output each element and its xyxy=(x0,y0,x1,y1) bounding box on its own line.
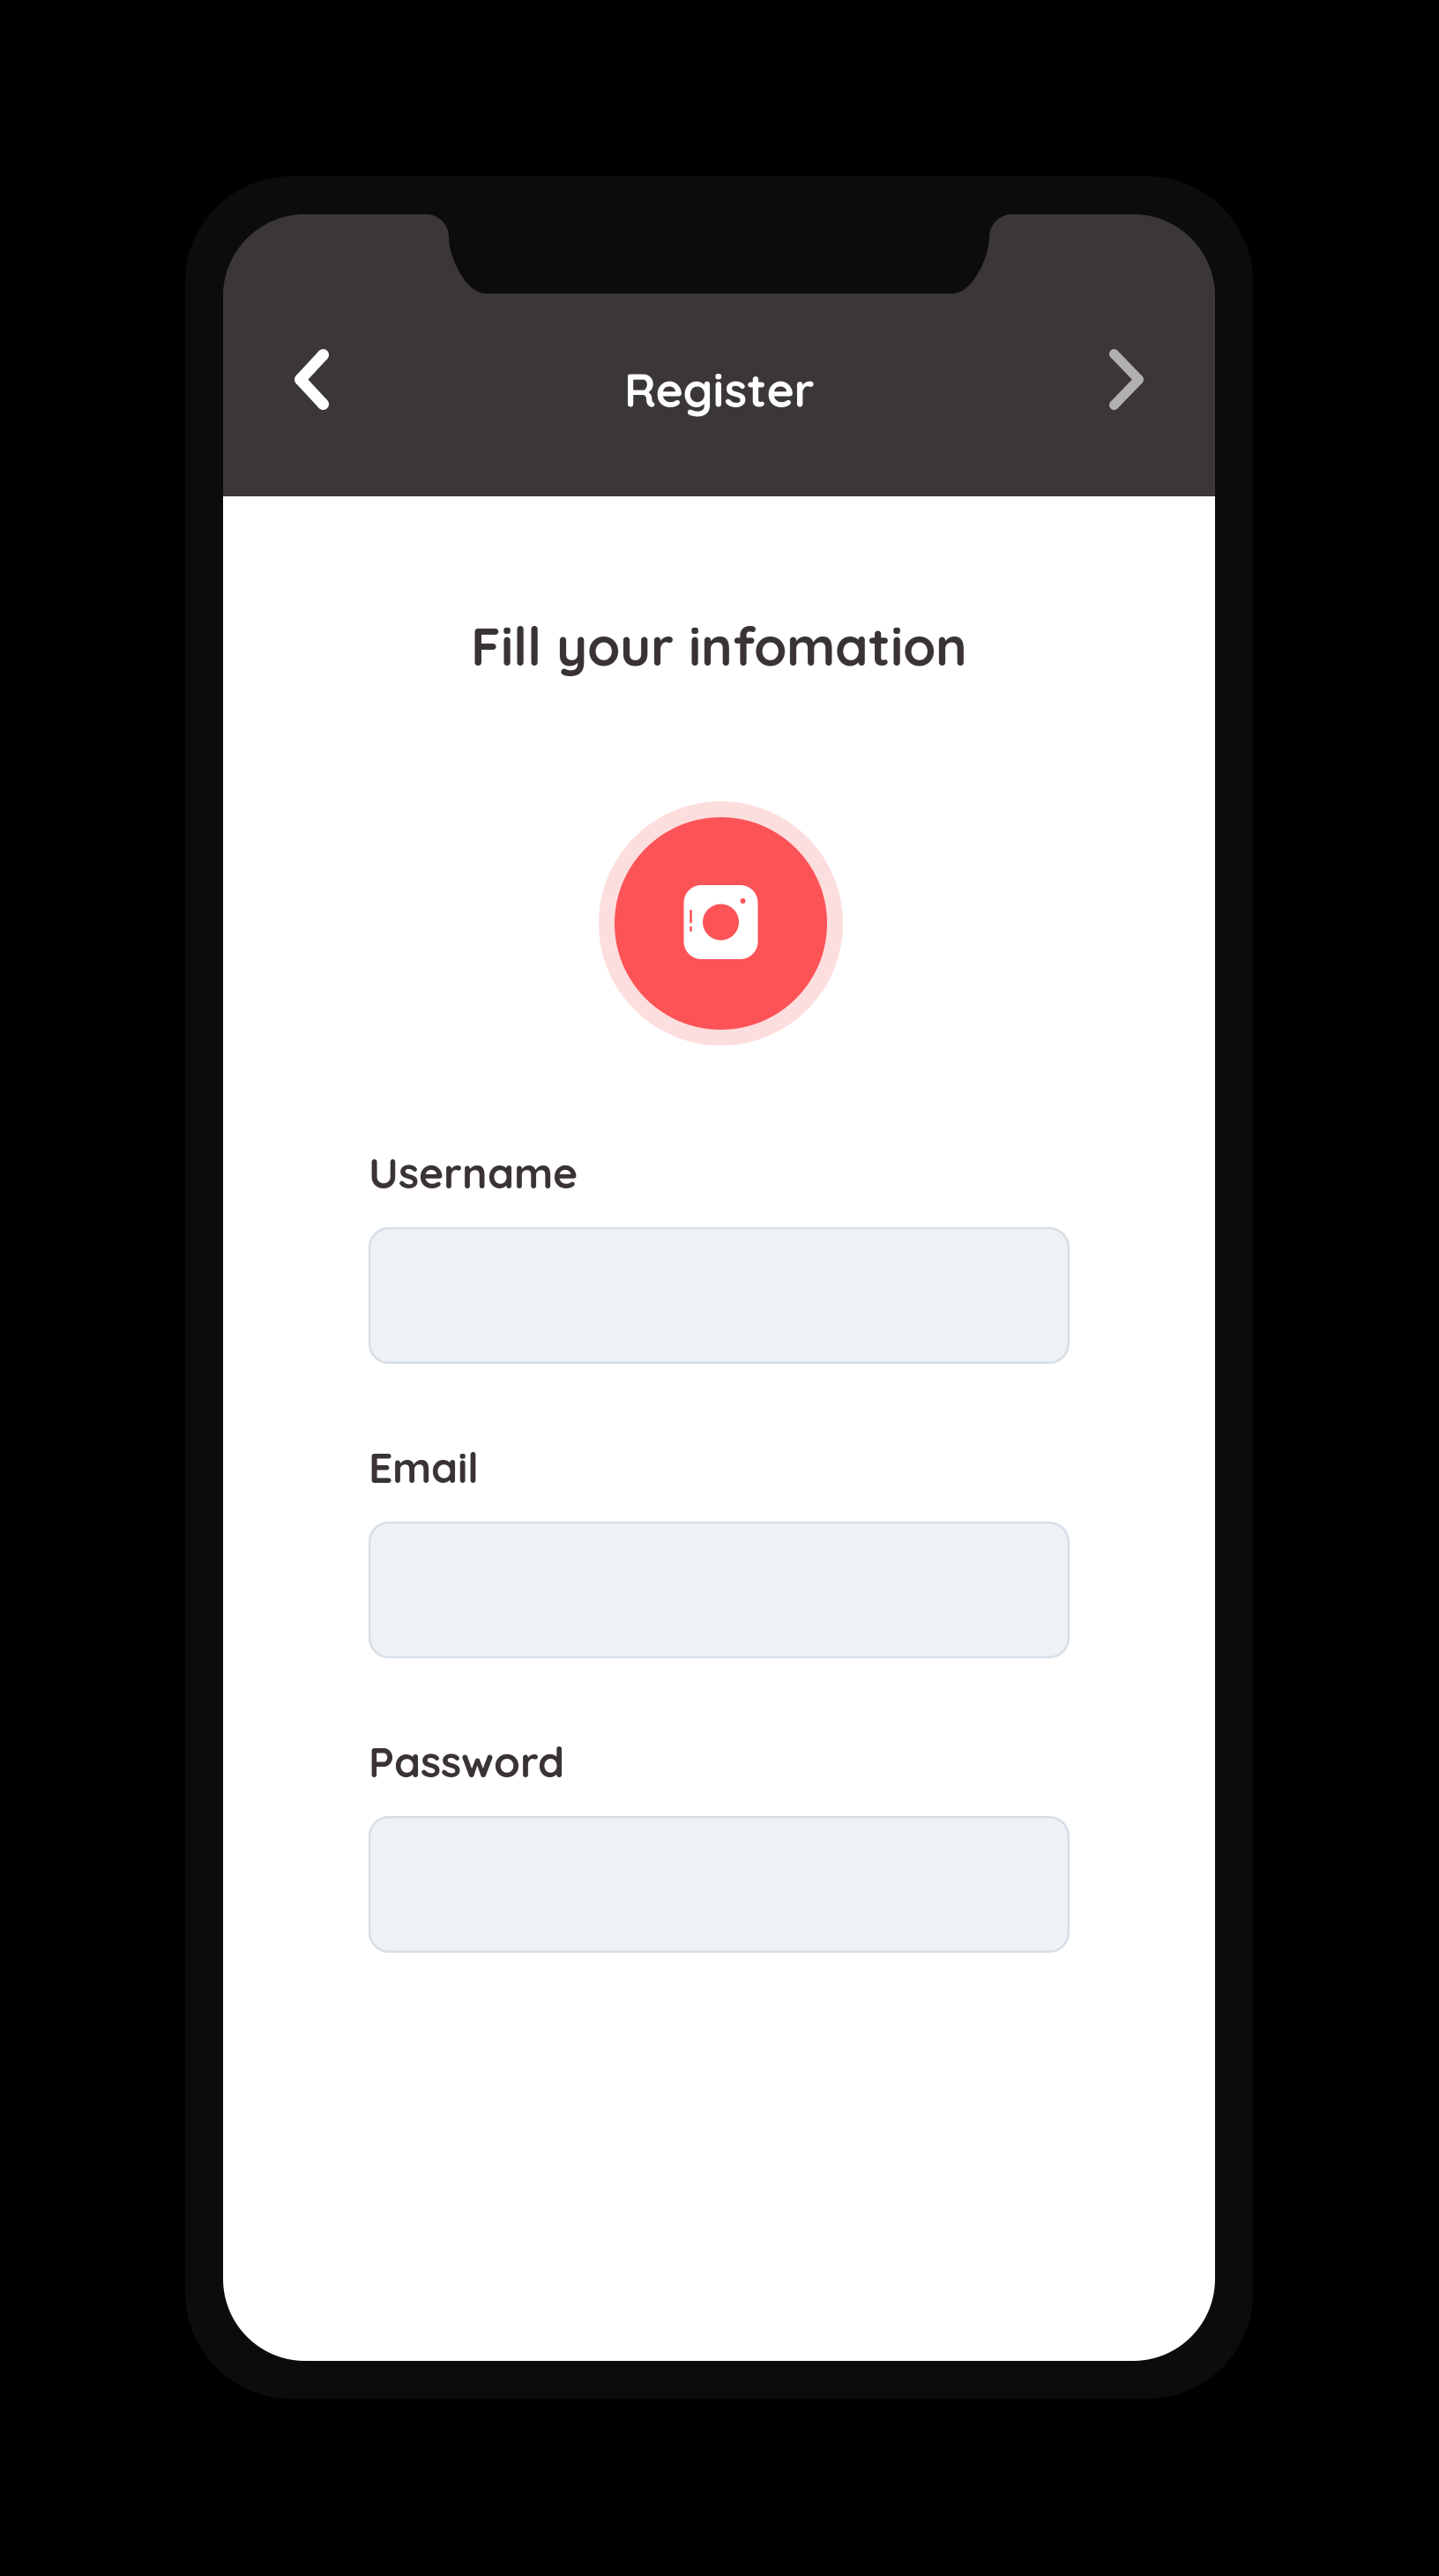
button[interactable]: Password xyxy=(369,1816,1070,1953)
button[interactable]: Back xyxy=(265,326,359,433)
staticText: Register xyxy=(624,360,814,419)
button[interactable]: Email xyxy=(369,1522,1070,1658)
staticText: Email xyxy=(369,1441,479,1493)
staticText: Fill your infomation xyxy=(471,613,967,679)
staticText: Username xyxy=(369,1146,578,1199)
button[interactable]: Choose profile photo xyxy=(599,801,843,1046)
button[interactable]: Username xyxy=(369,1227,1070,1364)
button[interactable]: Next xyxy=(1079,326,1174,433)
staticText: Password xyxy=(369,1735,564,1788)
